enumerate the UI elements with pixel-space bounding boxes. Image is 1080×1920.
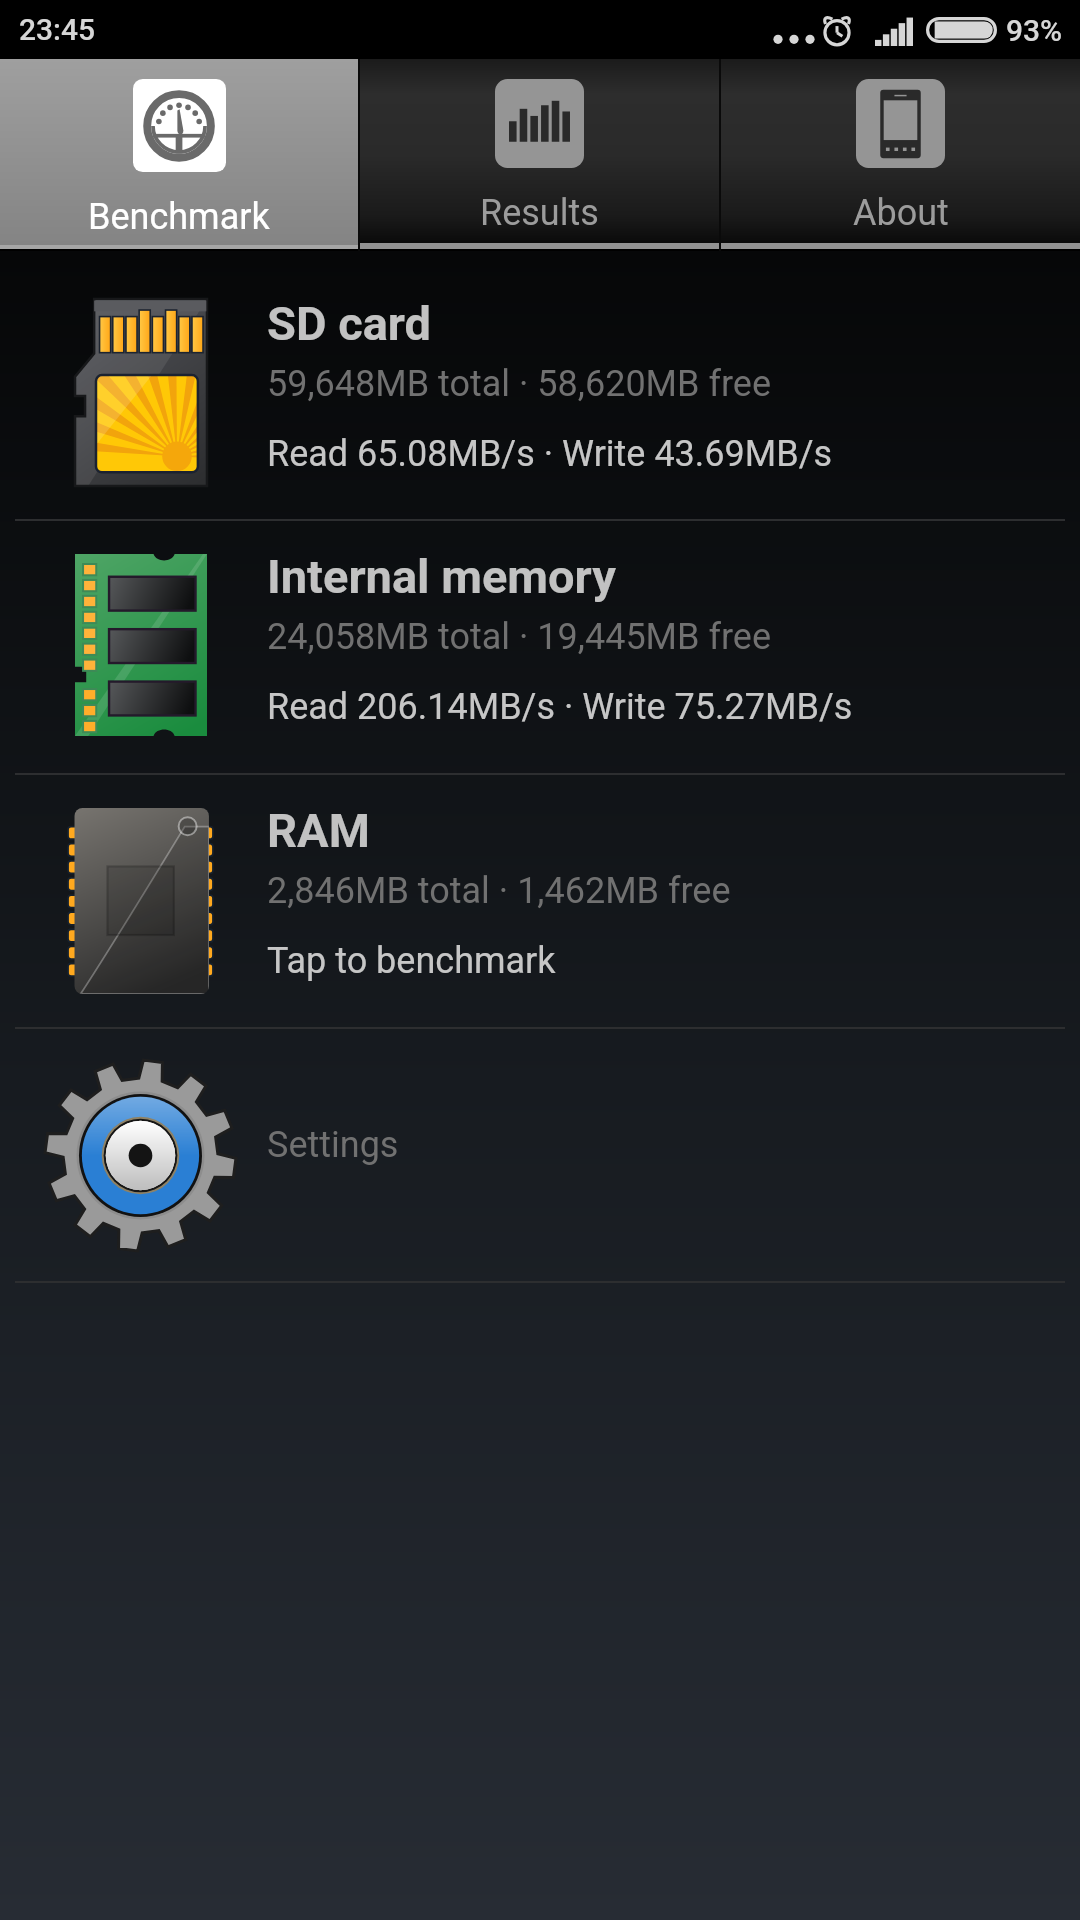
staticText: 23:45 (19, 12, 96, 47)
staticText: Read 206.14MB/s · Write 75.27MB/s (267, 686, 853, 728)
button[interactable]: Results tab (360, 59, 719, 251)
button[interactable]: About tab (721, 59, 1080, 251)
staticText: Settings (267, 1124, 399, 1166)
staticText: 93% (1006, 13, 1063, 48)
button[interactable]: Settings (0, 1029, 1080, 1281)
button[interactable]: RAM (0, 775, 1080, 1027)
staticText: About (853, 192, 949, 234)
staticText: Tap to benchmark (267, 940, 556, 982)
staticText: 59,648MB total · 58,620MB free (267, 363, 771, 405)
staticText: 24,058MB total · 19,445MB free (267, 616, 771, 658)
staticText: Internal memory (267, 549, 616, 604)
staticText: 2,846MB total · 1,462MB free (267, 870, 731, 912)
staticText: Results (480, 192, 599, 234)
button[interactable]: Benchmark tab (0, 59, 358, 251)
staticText: SD card (267, 296, 432, 351)
staticText: Benchmark (88, 196, 270, 238)
staticText: Read 65.08MB/s · Write 43.69MB/s (267, 433, 833, 475)
button[interactable]: Internal memory (0, 521, 1080, 773)
button[interactable]: SD card (0, 251, 1080, 519)
staticText: RAM (267, 803, 370, 858)
